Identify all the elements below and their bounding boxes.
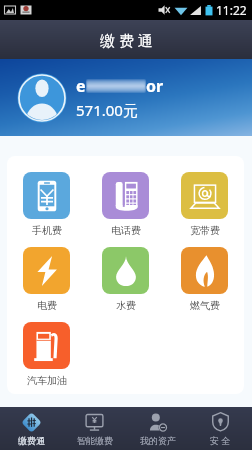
- staticText: 11:22: [216, 2, 247, 18]
- staticText: 我的资产: [140, 435, 176, 446]
- button[interactable]: 电费: [17, 246, 76, 313]
- staticText: 571.00元: [76, 100, 138, 120]
- button[interactable]: 安 全: [189, 407, 252, 450]
- button[interactable]: 水费: [96, 246, 155, 313]
- button[interactable]: 燃气费: [175, 246, 234, 313]
- staticText: e: [76, 75, 86, 97]
- button[interactable]: 智能缴费: [63, 407, 126, 450]
- staticText: 电费: [37, 299, 57, 312]
- staticText: 手机费: [32, 224, 62, 237]
- staticText: 智能缴费: [77, 435, 113, 446]
- staticText: 安 全: [210, 434, 231, 446]
- staticText: 燃气费: [190, 299, 220, 312]
- button[interactable]: 宽带费: [175, 171, 234, 238]
- staticText: 缴 费 通: [100, 30, 153, 50]
- staticText: 电话费: [111, 224, 141, 237]
- staticText: 宽带费: [190, 224, 220, 237]
- staticText: 水费: [116, 299, 136, 312]
- button[interactable]: 手机费: [17, 171, 76, 238]
- staticText: 缴费通: [18, 435, 45, 446]
- staticText: or: [146, 75, 164, 97]
- button[interactable]: 我的资产: [126, 407, 189, 450]
- staticText: 汽车加油: [27, 374, 67, 387]
- button[interactable]: 缴费通: [0, 407, 63, 450]
- button[interactable]: 电话费: [96, 171, 155, 238]
- button[interactable]: 汽车加油: [17, 321, 76, 388]
